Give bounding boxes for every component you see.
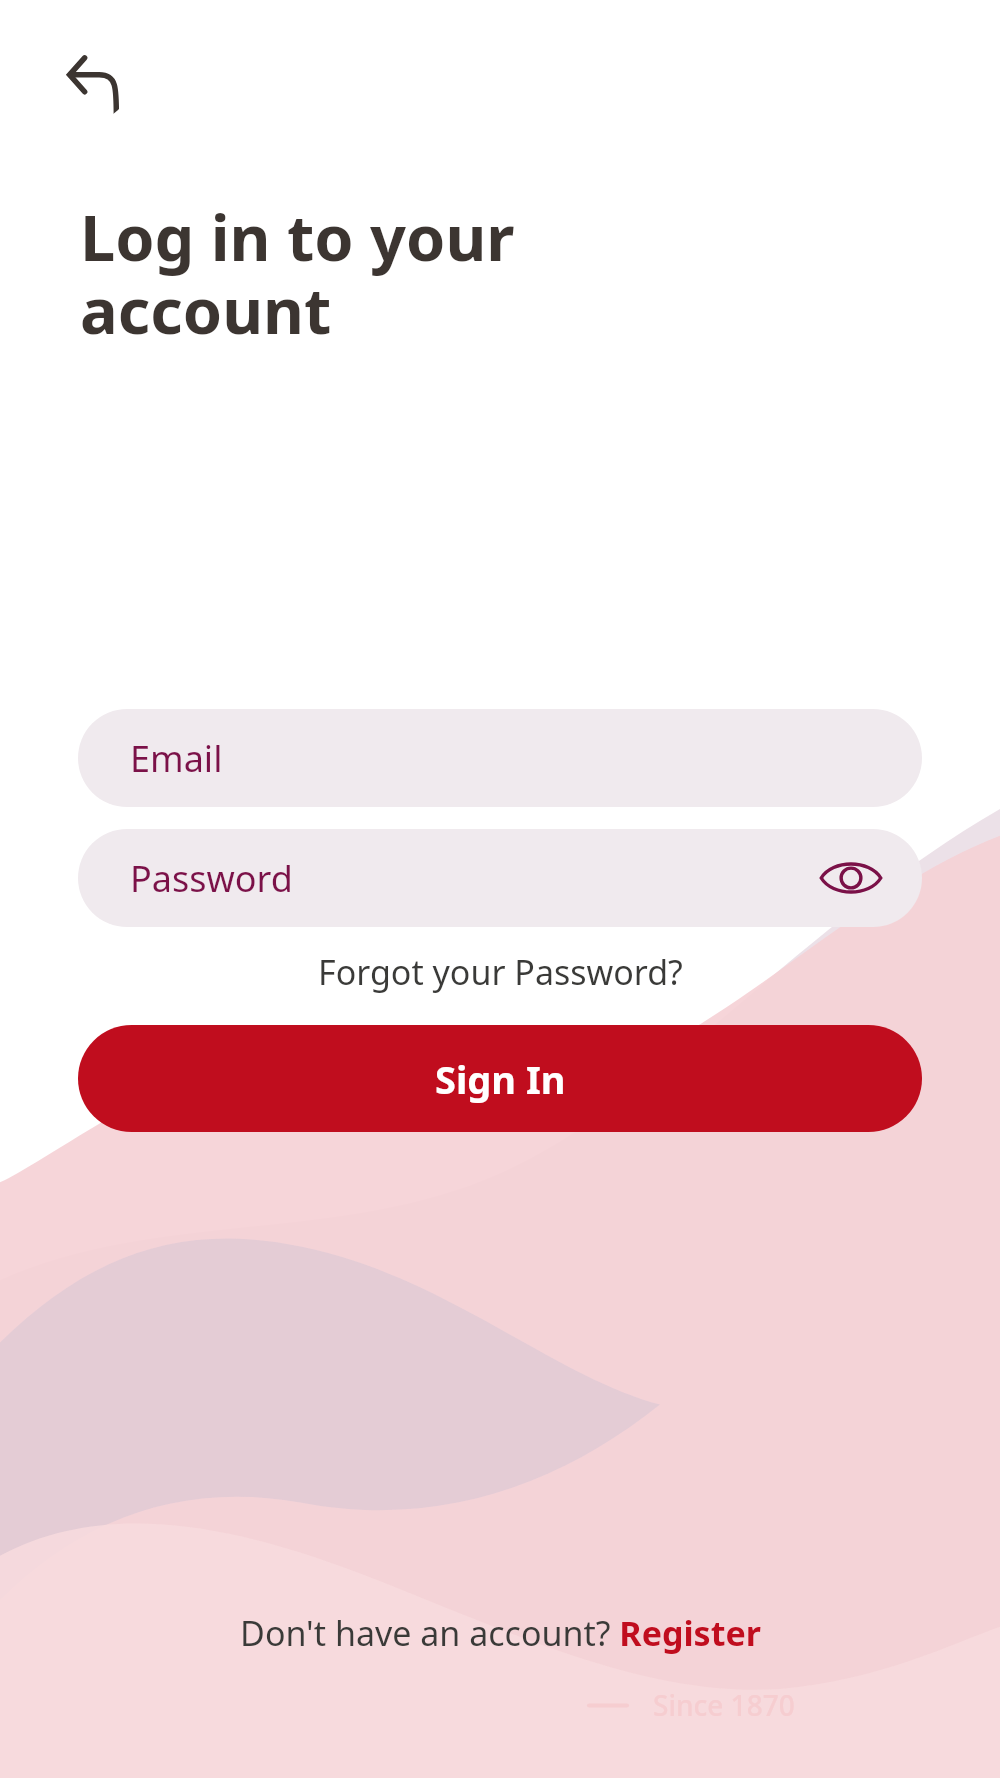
staticText: Since 1870	[653, 1686, 795, 1724]
button[interactable]: Don't have an account? Register	[232, 1606, 769, 1660]
button[interactable]: Back	[60, 52, 128, 120]
staticText: Don't have an account? Register	[240, 1610, 761, 1656]
staticText: Email	[130, 734, 223, 783]
staticText: Password	[130, 854, 293, 903]
staticText: Sign In	[435, 1053, 566, 1105]
button[interactable]: Forgot your Password?	[306, 941, 695, 1003]
staticText: Log in to your account	[80, 194, 515, 352]
staticText: Forgot your Password?	[318, 949, 683, 995]
button[interactable]: Email	[78, 709, 922, 807]
button[interactable]: Show password	[814, 841, 888, 915]
button[interactable]: Sign In	[78, 1025, 922, 1132]
button[interactable]: Password	[78, 829, 922, 927]
